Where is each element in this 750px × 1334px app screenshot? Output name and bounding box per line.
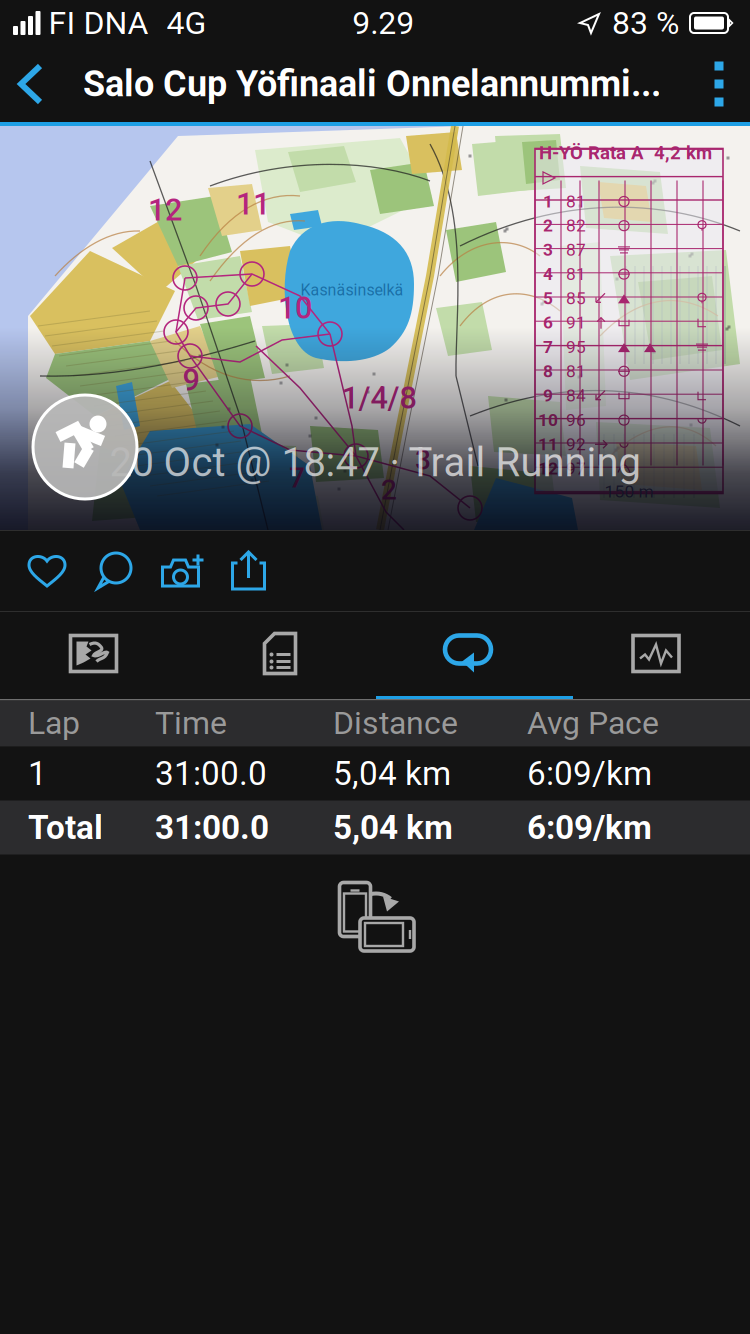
staticText: 20 Oct @ 18:47 · Trail Running (109, 439, 640, 486)
staticText: 81 (566, 191, 586, 212)
button[interactable]: Back (0, 45, 62, 123)
staticText: 10 (538, 410, 558, 430)
staticText: Total (28, 808, 103, 847)
staticText: 12 (538, 458, 558, 479)
staticText: 3 (415, 444, 431, 476)
staticText: 8 (543, 361, 553, 381)
staticText: 31:00.0 (155, 754, 267, 793)
staticText: Lap (28, 704, 80, 742)
staticText: 87 (566, 240, 586, 260)
staticText: Distance (333, 704, 458, 742)
staticText: 11 (538, 434, 558, 454)
staticText: 7 (543, 337, 553, 357)
staticText: 3 (543, 240, 553, 260)
staticText: 1/4/8 (341, 380, 416, 416)
button[interactable]: Graphs (562, 612, 750, 699)
staticText: Kasnäsinselkä (300, 281, 403, 299)
staticText: 10 (278, 290, 312, 326)
staticText: 2 (381, 474, 397, 506)
button[interactable]: Comment (81, 531, 148, 611)
staticText: Salo Cup Yöfinaali Onnelannummi... (83, 63, 661, 105)
staticText: 81 (566, 264, 586, 284)
staticText: 31:00.0 (155, 808, 269, 847)
staticText: 6:09/km (527, 754, 652, 793)
staticText: 6:09/km (527, 808, 652, 847)
button[interactable]: More options (688, 45, 750, 123)
staticText: 6 (543, 312, 553, 333)
staticText: 85 (566, 288, 586, 308)
staticText: 84 (566, 385, 586, 406)
staticText: 1 (543, 191, 553, 212)
staticText: 5 (543, 288, 553, 308)
staticText: 150 m (604, 481, 653, 502)
staticText: 11 (236, 186, 270, 222)
button[interactable]: Laps (374, 612, 562, 699)
staticText: 9 (182, 362, 199, 398)
staticText: H-YÖ Rata A 4,2 km (539, 142, 712, 164)
button[interactable]: Map (0, 612, 187, 699)
button[interactable]: Share (215, 531, 282, 611)
button[interactable]: Details (187, 612, 374, 699)
staticText: 2 (543, 215, 553, 236)
staticText: 95 (566, 337, 586, 357)
staticText: 4 (543, 264, 553, 284)
button[interactable]: Add photo (148, 531, 215, 611)
staticText: Avg Pace (527, 704, 659, 742)
staticText: 1 (28, 754, 47, 793)
staticText: 92 (566, 434, 586, 454)
staticText: 7 (289, 462, 305, 494)
button[interactable]: Like (14, 531, 81, 611)
staticText: 12 (148, 192, 182, 228)
staticText: FI DNA (48, 4, 148, 42)
staticText: 81 (566, 361, 586, 381)
staticText: 91 (566, 312, 586, 333)
staticText: 83 % (612, 4, 679, 42)
staticText: 4G (166, 4, 206, 42)
staticText: 5,04 km (333, 754, 451, 793)
staticText: 96 (566, 410, 586, 430)
staticText: 97 (566, 458, 586, 479)
staticText: 9.29 (352, 4, 414, 42)
staticText: 82 (566, 215, 586, 236)
staticText: 5,04 km (333, 808, 453, 847)
staticText: 9 (543, 385, 553, 406)
staticText: Time (155, 704, 227, 742)
